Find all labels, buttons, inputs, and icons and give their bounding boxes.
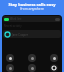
button[interactable]: Hold <box>28 64 36 72</box>
staticText: Stay business calls easy <box>1 2 63 7</box>
staticText: from anywhere <box>1 6 63 10</box>
button[interactable]: Add call <box>6 64 14 72</box>
button[interactable]: Speaker <box>50 54 58 62</box>
button[interactable]: Work line <box>3 16 61 22</box>
staticText: Recent activity <box>4 24 22 28</box>
button[interactable]: Mute <box>6 54 14 62</box>
staticText: Jane Cooper <box>12 33 28 37</box>
button[interactable]: End call <box>50 64 58 72</box>
staticText: Work line <box>10 17 22 21</box>
button[interactable]: Jane Cooper <box>3 30 61 38</box>
button[interactable]: Keypad <box>28 54 36 62</box>
